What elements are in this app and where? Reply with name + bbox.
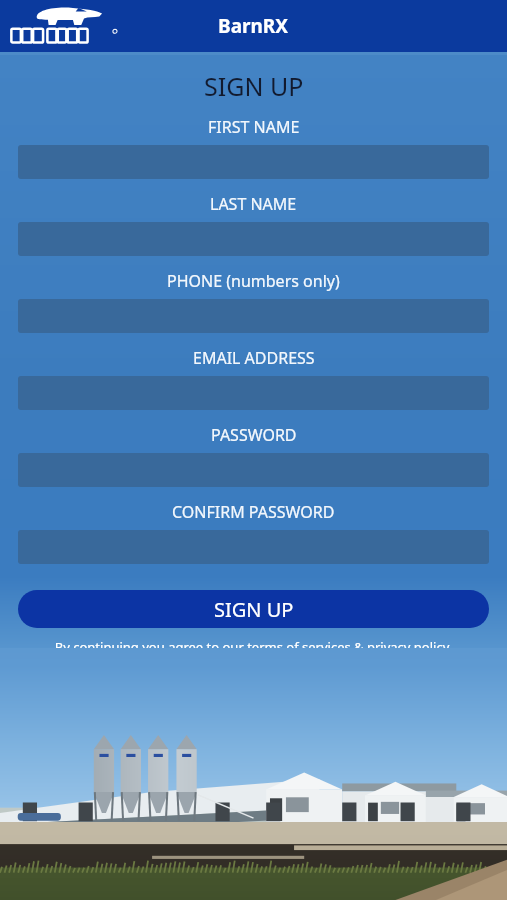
staticText: FIRST NAME	[208, 116, 300, 138]
staticText: By continuing you agree to our terms of …	[10, 638, 497, 648]
staticText: CONFIRM PASSWORD	[172, 501, 335, 523]
staticText: PASSWORD	[211, 424, 297, 446]
button[interactable]: SIGN UP	[18, 590, 489, 628]
staticText: BarnRX	[218, 13, 289, 39]
staticText: SIGN UP	[204, 69, 304, 103]
staticText: SIGN UP	[214, 596, 294, 623]
staticText: PHONE (numbers only)	[167, 270, 340, 292]
staticText: EMAIL ADDRESS	[193, 347, 315, 369]
staticText: LAST NAME	[210, 193, 297, 215]
button[interactable]: Hog Slat logo	[8, 3, 120, 49]
